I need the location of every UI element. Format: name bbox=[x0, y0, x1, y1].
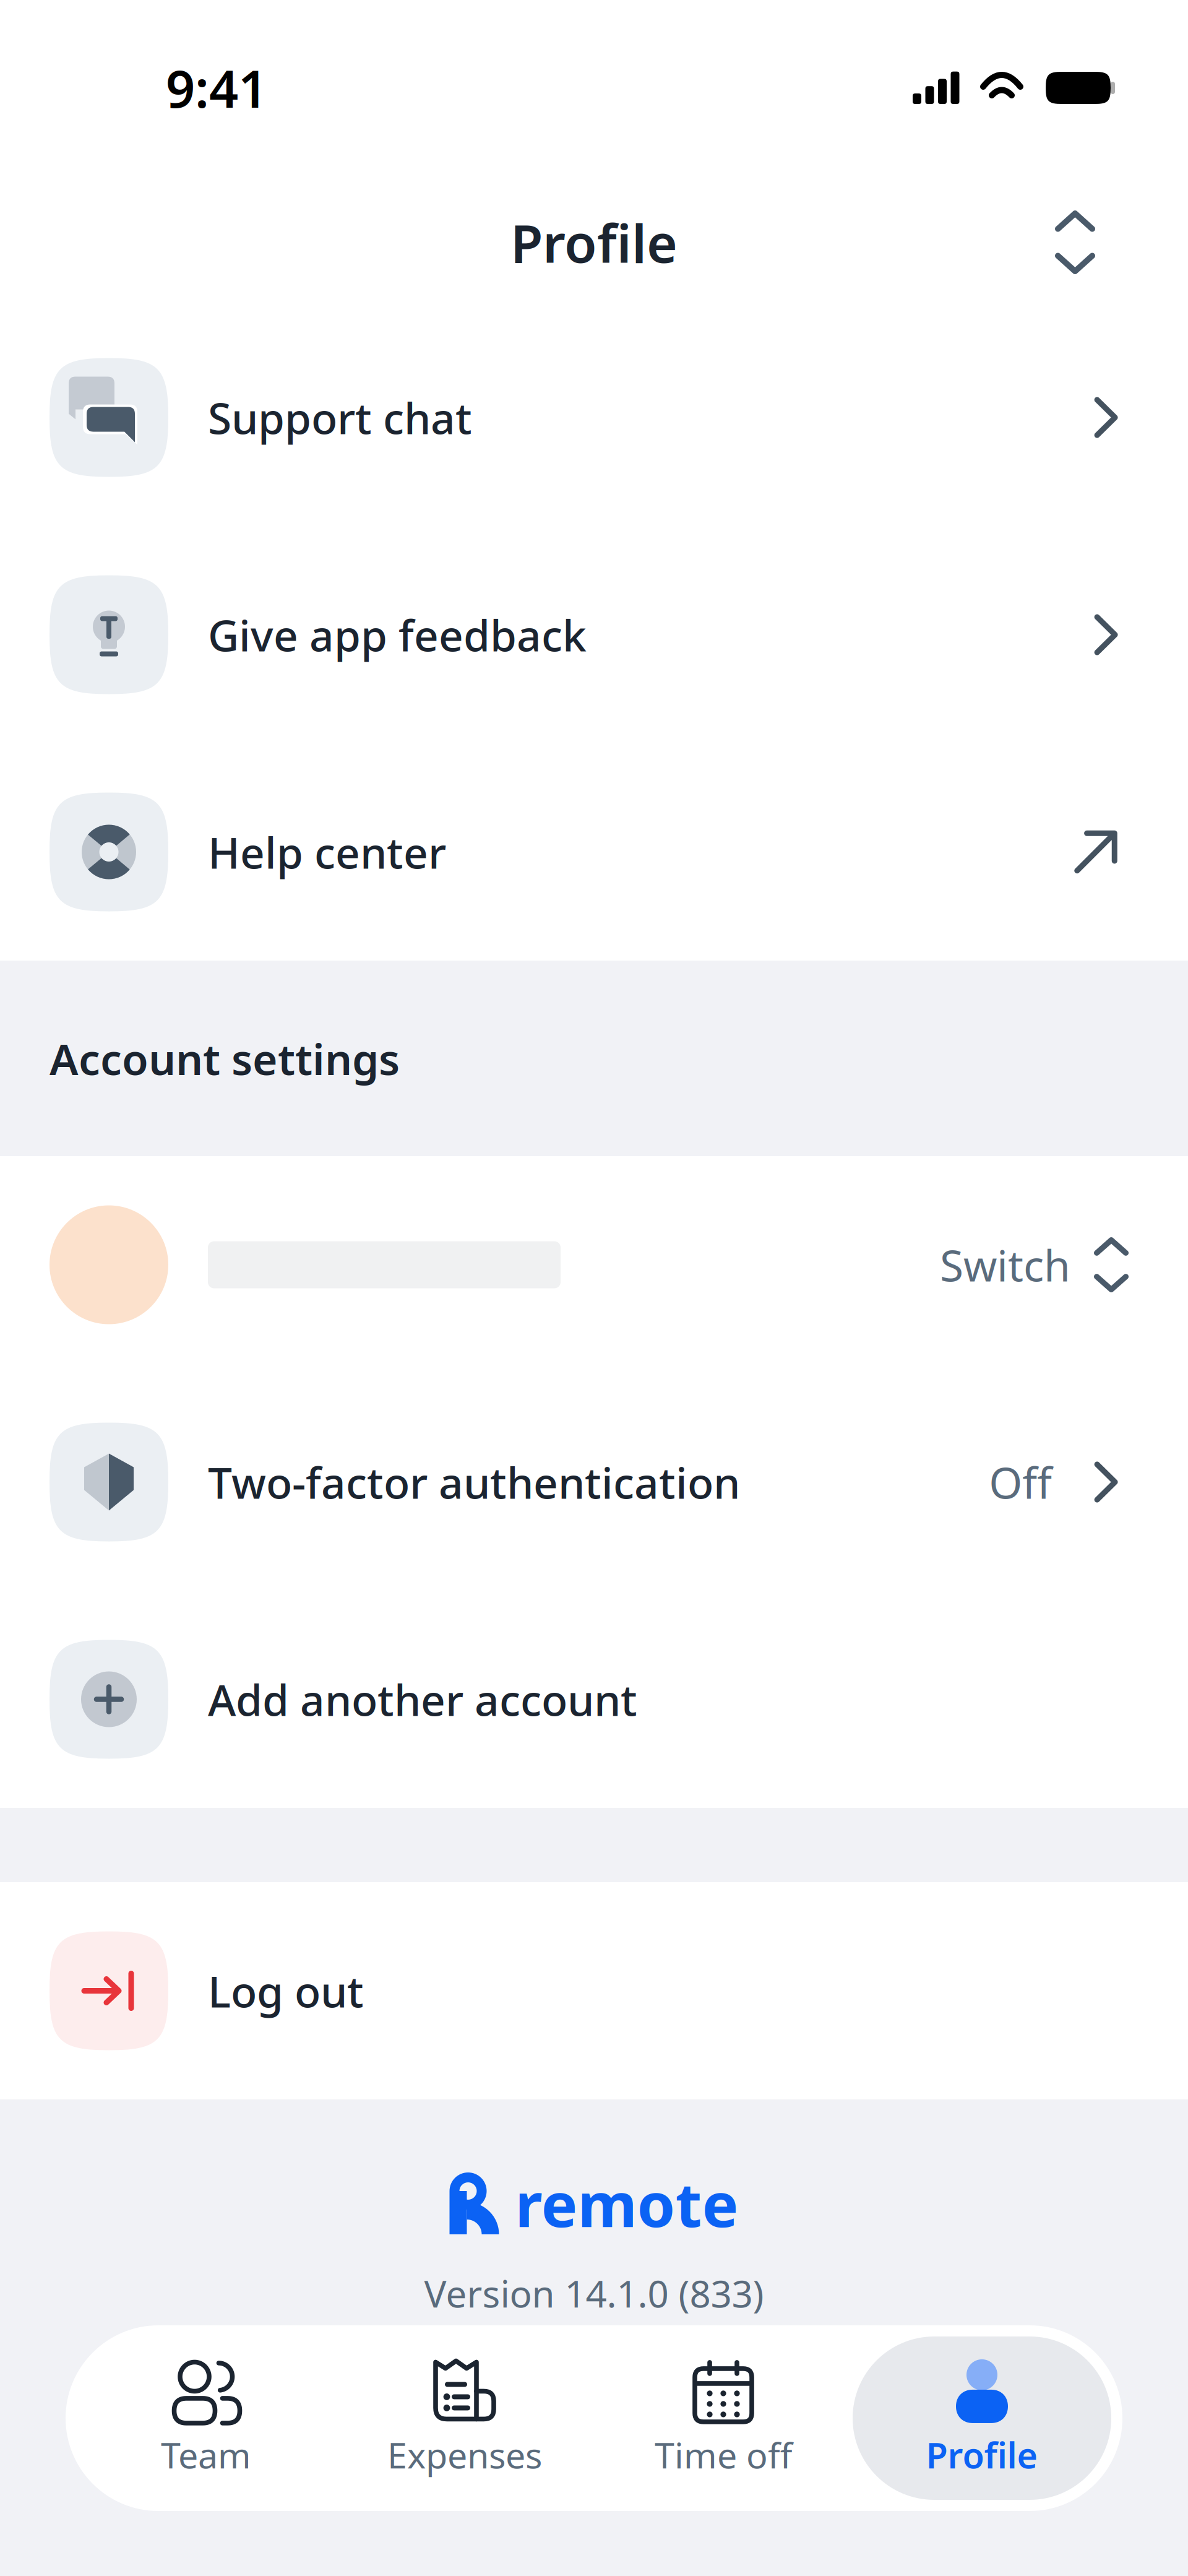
staticText: Time off bbox=[655, 2431, 792, 2478]
staticText: Add another account bbox=[208, 1671, 637, 1728]
button[interactable]: Switch bbox=[0, 1156, 1188, 1373]
button[interactable]: Time off bbox=[594, 2336, 853, 2500]
staticText: Team bbox=[161, 2431, 251, 2478]
button[interactable]: Give app feedback bbox=[0, 526, 1188, 743]
button[interactable]: Profile bbox=[853, 2336, 1111, 2500]
button[interactable]: Help center bbox=[0, 743, 1188, 961]
button[interactable]: Support chat bbox=[0, 309, 1188, 526]
staticText: Off bbox=[989, 1454, 1052, 1511]
button[interactable]: Add another account bbox=[0, 1591, 1188, 1808]
button[interactable]: Expenses bbox=[335, 2336, 594, 2500]
staticText: Switch bbox=[940, 1236, 1070, 1293]
staticText: remote bbox=[515, 2163, 738, 2244]
button[interactable]: Switch account bbox=[1008, 175, 1142, 309]
staticText: Help center bbox=[208, 823, 446, 880]
staticText: Support chat bbox=[208, 389, 472, 446]
button[interactable]: Team bbox=[77, 2336, 335, 2500]
staticText: Log out bbox=[208, 1962, 364, 2019]
staticText: Profile bbox=[926, 2431, 1038, 2478]
staticText: Profile bbox=[510, 207, 678, 277]
button[interactable]: Two-factor authentication bbox=[0, 1373, 1188, 1591]
staticText: Account settings bbox=[49, 1030, 400, 1087]
button[interactable]: Log out bbox=[0, 1882, 1188, 2099]
staticText: Version 14.1.0 (833) bbox=[424, 2269, 764, 2318]
staticText: Expenses bbox=[387, 2431, 542, 2478]
staticText: Two-factor authentication bbox=[208, 1454, 740, 1511]
staticText: 9:41 bbox=[166, 54, 267, 122]
staticText: Give app feedback bbox=[208, 606, 587, 663]
